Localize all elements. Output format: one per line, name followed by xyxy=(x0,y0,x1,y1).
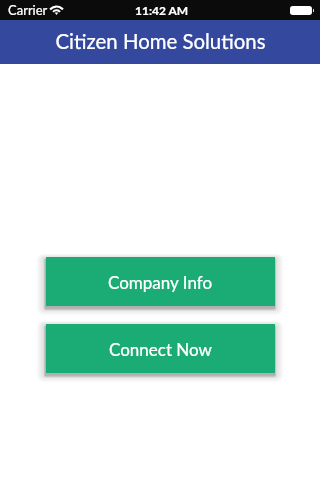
staticText: Citizen Home Solutions xyxy=(55,29,266,53)
other: Battery full xyxy=(290,6,314,15)
staticText: 11:42 AM xyxy=(135,3,189,17)
button[interactable]: Company Info xyxy=(46,257,275,306)
button[interactable]: Connect Now xyxy=(46,324,275,373)
other: Wi-Fi signal xyxy=(50,5,63,15)
staticText: Company Info xyxy=(108,272,213,292)
staticText: Connect Now xyxy=(109,339,212,359)
staticText: Carrier xyxy=(8,2,48,18)
